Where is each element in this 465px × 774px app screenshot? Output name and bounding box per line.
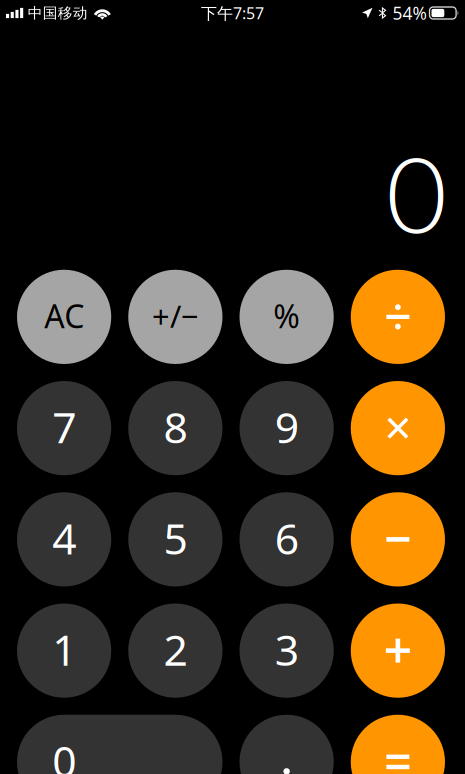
staticText: 7	[52, 398, 76, 455]
staticText: 4	[52, 509, 76, 566]
staticText: 54%	[392, 1, 426, 24]
button[interactable]: 1	[17, 603, 111, 698]
staticText: +/−	[152, 295, 199, 336]
staticText: 9	[275, 398, 299, 455]
staticText: AC	[44, 295, 84, 337]
staticText: %	[273, 295, 300, 337]
staticText: 6	[275, 509, 299, 566]
button[interactable]: AC	[17, 270, 111, 364]
button[interactable]: 7	[17, 381, 111, 475]
button[interactable]: 0	[17, 715, 222, 774]
staticText: 中国移动	[28, 4, 88, 22]
button[interactable]: Subtract	[351, 492, 445, 586]
button[interactable]: +/−	[128, 270, 222, 364]
button[interactable]: 2	[128, 603, 222, 698]
button[interactable]: Equals	[351, 715, 445, 774]
button[interactable]: Decimal point	[239, 715, 334, 774]
staticText: 1	[52, 621, 76, 677]
button[interactable]: Divide	[351, 270, 445, 364]
staticText: 0	[52, 732, 76, 774]
button[interactable]: 4	[17, 492, 111, 586]
button[interactable]: Multiply	[351, 381, 445, 475]
staticText: 8	[163, 398, 187, 455]
staticText: 3	[275, 621, 299, 677]
button[interactable]: 8	[128, 381, 222, 475]
staticText: 0	[386, 129, 447, 256]
button[interactable]: Add	[351, 603, 445, 698]
button[interactable]: %	[239, 270, 334, 364]
button[interactable]: 6	[239, 492, 334, 586]
staticText: 下午7:57	[201, 2, 264, 24]
staticText: 5	[163, 509, 187, 566]
button[interactable]: 5	[128, 492, 222, 586]
button[interactable]: 3	[239, 603, 334, 698]
staticText: 2	[163, 621, 187, 677]
button[interactable]: 9	[239, 381, 334, 475]
